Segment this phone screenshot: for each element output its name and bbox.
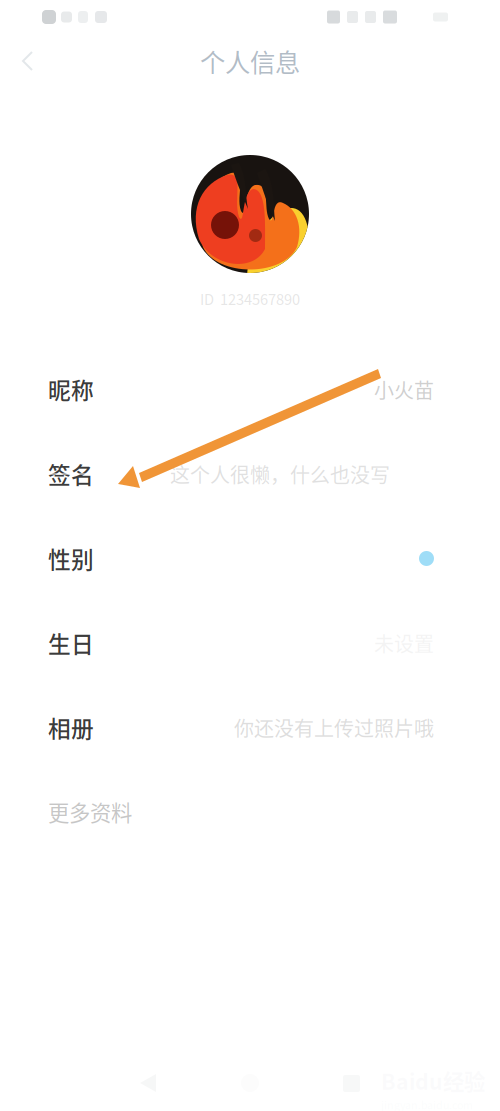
button[interactable]: 性别 — [0, 516, 500, 601]
staticText: ID 1234567890 — [200, 288, 300, 309]
staticText: 你还没有上传过照片哦 — [234, 713, 434, 742]
button[interactable]: 生日 — [0, 601, 500, 685]
button[interactable]: 更多资料 — [0, 770, 500, 840]
staticText: 这个人很懒，什么也没写 — [170, 459, 390, 488]
staticText: 未设置 — [374, 628, 434, 657]
button[interactable]: Change profile photo — [191, 155, 309, 273]
staticText: 小火苗 — [374, 375, 434, 404]
staticText: 昵称 — [48, 373, 94, 406]
staticText: 更多资料 — [48, 796, 132, 827]
button[interactable]: 相册 — [0, 685, 500, 770]
staticText: 个人信息 — [200, 43, 300, 79]
button[interactable]: Back — [0, 37, 52, 85]
staticText: 生日 — [48, 627, 94, 659]
staticText: 相册 — [48, 711, 94, 744]
staticText: 签名 — [48, 458, 94, 490]
staticText: 性别 — [48, 542, 94, 575]
button[interactable]: 签名 — [0, 432, 500, 516]
button[interactable]: 昵称 — [0, 347, 500, 432]
